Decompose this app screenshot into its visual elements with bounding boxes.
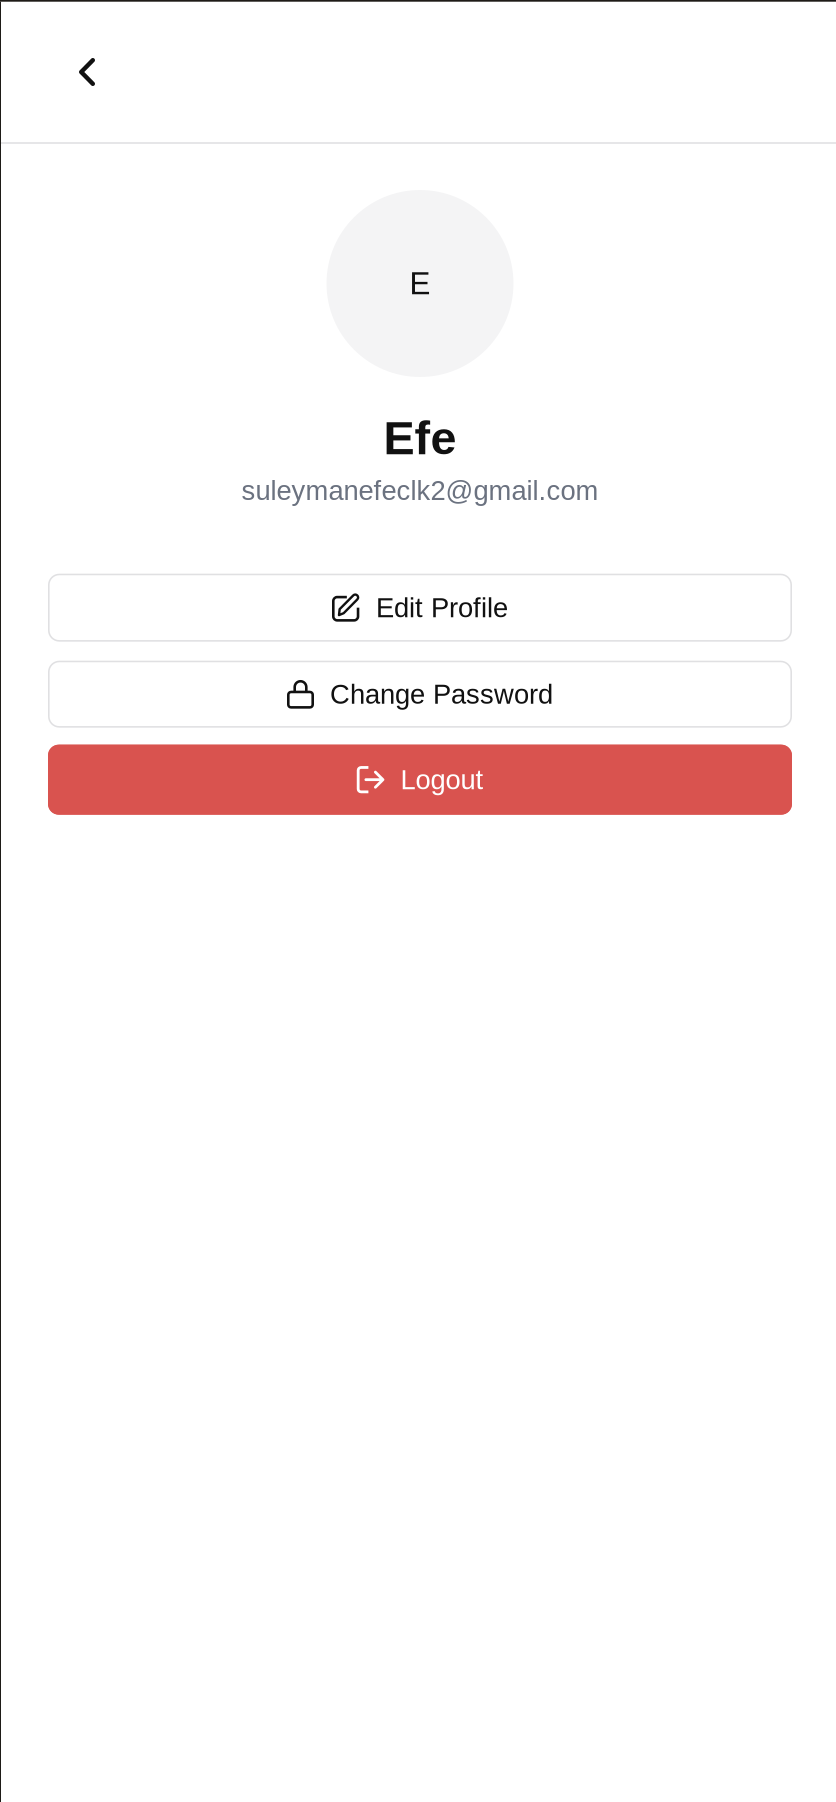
staticText: Logout <box>400 764 483 795</box>
staticText: Change Password <box>330 679 553 709</box>
staticText: suleymanefeclk2@gmail.com <box>241 475 598 506</box>
staticText: Efe <box>383 412 456 464</box>
button[interactable]: Logout <box>48 745 792 815</box>
button[interactable]: Edit Profile <box>48 574 792 642</box>
button[interactable]: Change Password <box>48 661 792 728</box>
staticText: E <box>409 266 430 301</box>
button[interactable]: Back <box>63 40 111 102</box>
staticText: Edit Profile <box>376 592 508 623</box>
